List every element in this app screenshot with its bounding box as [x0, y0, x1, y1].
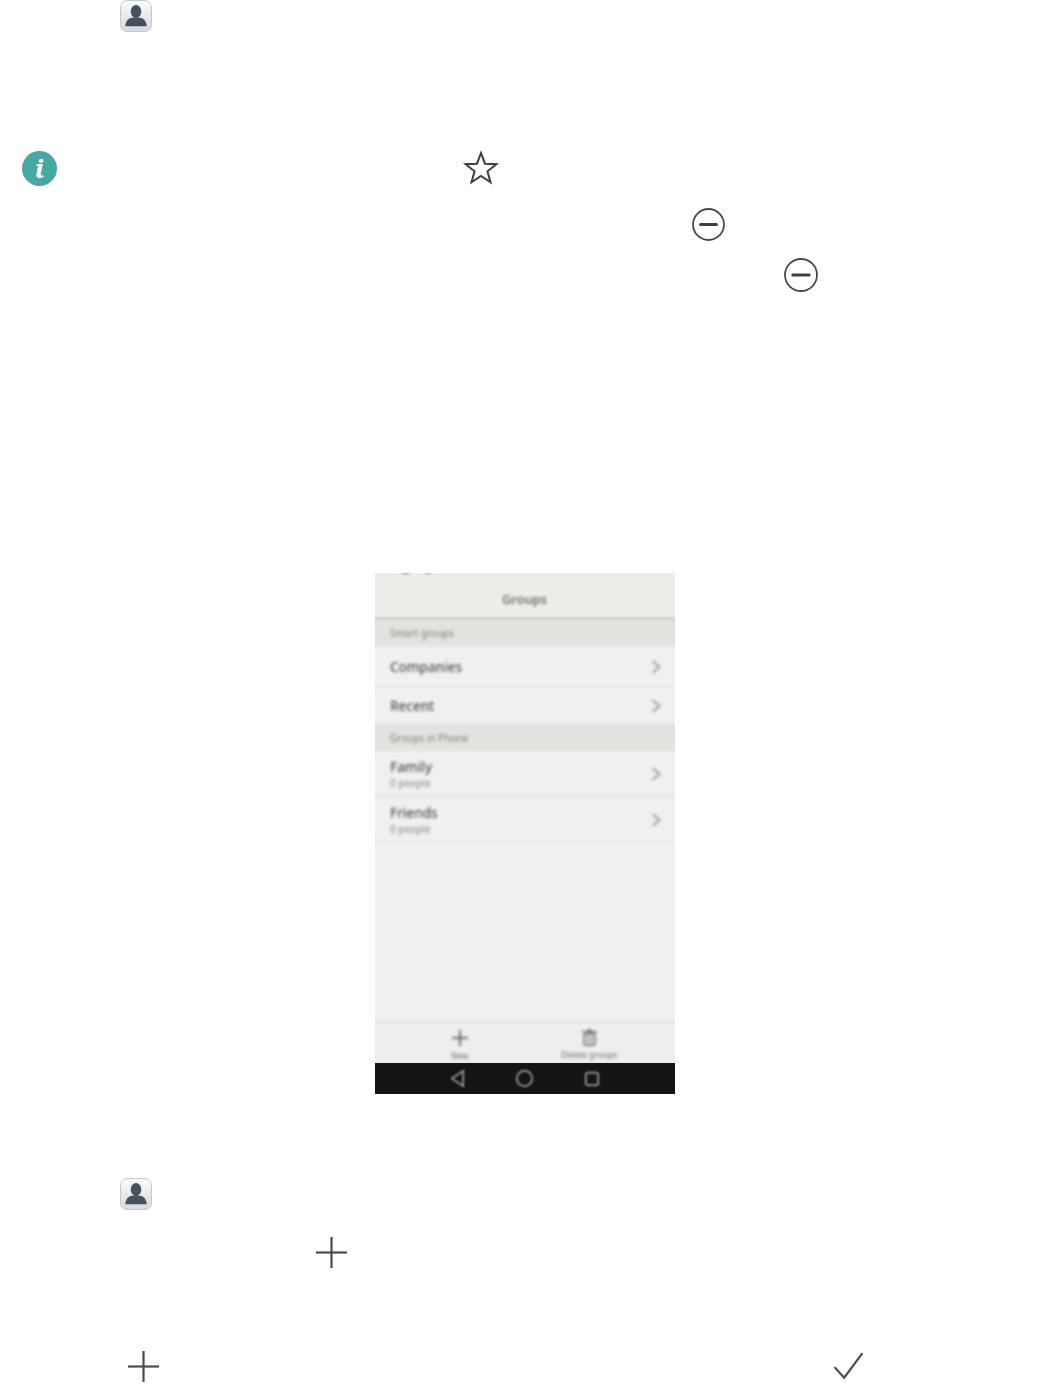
staticText: Friends [390, 804, 438, 822]
button[interactable] [120, 0, 152, 32]
button[interactable]: Recent [375, 687, 675, 725]
staticText: Delete groups [561, 1049, 618, 1061]
staticText: Companies [390, 658, 463, 676]
button[interactable] [516, 1070, 533, 1087]
button[interactable]: Friends [375, 797, 675, 843]
staticText: New [451, 1050, 469, 1062]
staticText: i [35, 151, 44, 185]
button[interactable]: Family [375, 751, 675, 797]
button[interactable] [451, 1070, 464, 1087]
staticText: Groups in Phone [390, 731, 469, 745]
button[interactable]: Delete groups [553, 1029, 625, 1061]
staticText: Recent [390, 697, 435, 715]
button[interactable]: New [435, 1030, 485, 1062]
button[interactable] [585, 1072, 599, 1086]
staticText: Smart groups [390, 626, 455, 640]
staticText: 0 people [390, 822, 431, 836]
button[interactable] [120, 1178, 152, 1210]
staticText: 0 people [390, 776, 431, 790]
button[interactable]: Companies [375, 646, 675, 687]
staticText: Family [390, 758, 433, 776]
staticText: Groups [502, 590, 548, 608]
